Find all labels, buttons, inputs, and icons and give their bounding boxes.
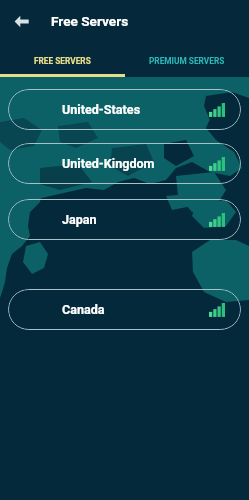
staticText: PREMIUM SERVERS — [149, 56, 225, 66]
button[interactable]: Canada — [8, 289, 241, 330]
staticText: United-Kingdom — [62, 156, 209, 171]
button[interactable]: United-Kingdom — [8, 143, 241, 184]
button[interactable]: United-States — [8, 89, 241, 130]
button[interactable]: PREMIUM SERVERS — [124, 42, 249, 77]
button[interactable]: Japan — [8, 199, 241, 240]
staticText: Free Servers — [51, 13, 129, 29]
staticText: United-States — [62, 102, 209, 117]
staticText: Japan — [62, 212, 209, 227]
button[interactable]: Back — [0, 0, 42, 42]
staticText: Canada — [62, 302, 209, 317]
button[interactable]: FREE SERVERS — [0, 42, 124, 77]
staticText: FREE SERVERS — [34, 56, 91, 66]
